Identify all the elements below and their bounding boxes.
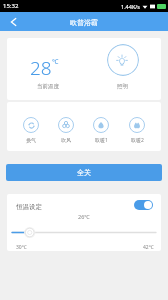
staticText: 全关 (77, 168, 91, 177)
staticText: 换气 (26, 137, 36, 143)
staticText: 恒温设定 (16, 203, 42, 211)
button[interactable]: 全关 (6, 164, 162, 181)
staticText: 取暖2 (131, 137, 144, 144)
button[interactable]: Temperature slider (12, 227, 156, 238)
staticText: 28 (30, 55, 52, 81)
staticText: 15:32 (3, 2, 19, 10)
staticText: 照明 (117, 83, 128, 90)
staticText: 欧普浴霸 (70, 18, 98, 27)
button[interactable]: Lighting (107, 44, 139, 76)
staticText: 42℃ (143, 244, 154, 251)
staticText: 当前温度 (37, 83, 59, 90)
button[interactable]: 取暖2 (119, 117, 155, 144)
staticText: 1.44K/s (121, 3, 140, 10)
button[interactable]: 换气 (13, 117, 48, 143)
staticText: 26℃ (78, 213, 90, 220)
button[interactable]: Back (0, 12, 26, 31)
staticText: ℃ (52, 57, 59, 66)
staticText: 取暖1 (95, 137, 108, 144)
staticText: 30℃ (16, 244, 27, 251)
button[interactable]: 取暖1 (83, 117, 119, 144)
staticText: 吹风 (61, 137, 71, 143)
button[interactable]: 吹风 (48, 117, 83, 143)
button[interactable]: Thermostat switch (134, 200, 153, 210)
